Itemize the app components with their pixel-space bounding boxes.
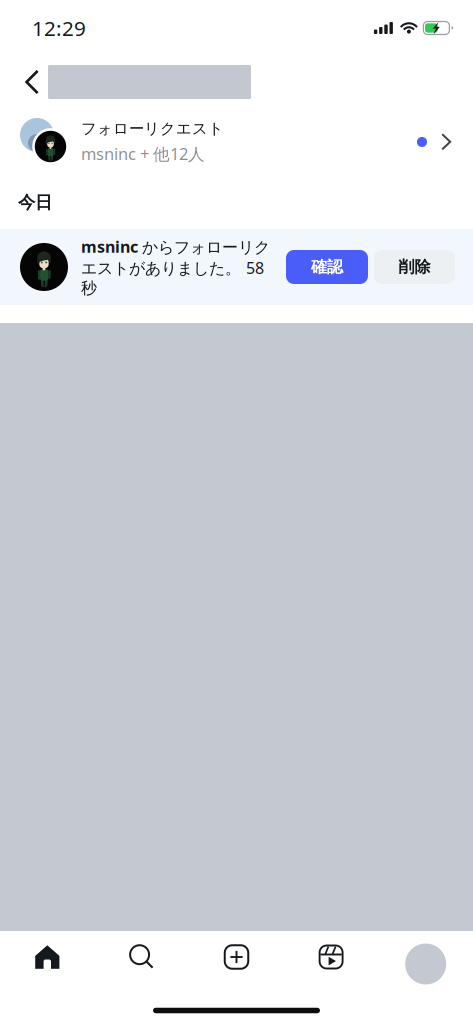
staticText: フォローリクエスト [81,119,224,138]
staticText: 確認 [311,257,343,277]
staticText: msninc からフォローリクエストがありました。 58秒 [81,236,270,298]
button[interactable]: Back [0,60,48,103]
button[interactable]: 確認 [286,250,368,284]
staticText: msninc + 他12人 [81,142,205,165]
button[interactable]: Search [95,944,189,969]
button[interactable]: Home [0,944,95,969]
staticText: 今日 [18,192,52,213]
staticText: 12:29 [32,14,86,42]
button[interactable]: Reels [284,944,378,969]
button[interactable]: フォローリクエスト [0,108,473,176]
button[interactable]: 削除 [374,250,455,284]
button[interactable]: Profile [378,936,473,977]
staticText: 削除 [398,257,430,277]
button[interactable]: Create [189,944,284,969]
